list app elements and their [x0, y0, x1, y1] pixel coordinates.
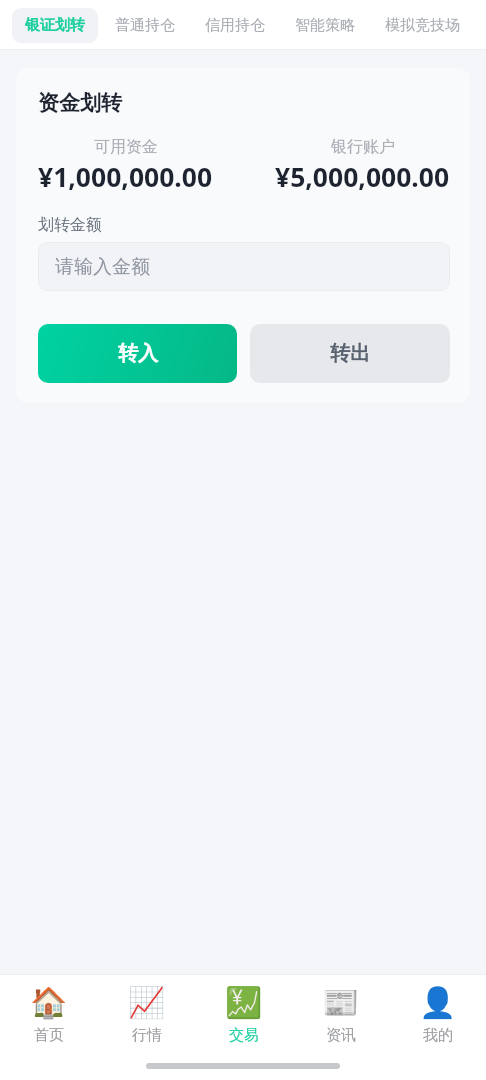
staticText: 交易: [229, 1026, 259, 1045]
button[interactable]: 请输入金额: [38, 242, 450, 291]
staticText: 请输入金额: [55, 255, 150, 279]
staticText: 银行账户: [331, 137, 395, 157]
staticText: 📰: [322, 985, 360, 1020]
staticText: ¥1,000,000.00: [38, 159, 213, 195]
button[interactable]: 模拟竞技场: [372, 8, 473, 43]
button[interactable]: News: [292, 975, 389, 1055]
staticText: 👤: [419, 985, 457, 1020]
button[interactable]: Market: [98, 975, 195, 1055]
staticText: ¥5,000,000.00: [275, 159, 450, 195]
staticText: 可用资金: [94, 137, 158, 157]
button[interactable]: Trade: [195, 975, 292, 1055]
staticText: 模拟竞技场: [385, 16, 460, 35]
button[interactable]: 信用持仓: [192, 8, 278, 43]
staticText: 转入: [118, 341, 158, 366]
staticText: 我的: [423, 1026, 453, 1045]
staticText: 智能策略: [295, 16, 355, 35]
staticText: 资金划转: [38, 90, 122, 116]
button[interactable]: 转入: [38, 324, 237, 383]
staticText: 💹: [225, 985, 263, 1020]
staticText: 资讯: [326, 1026, 356, 1045]
button[interactable]: Home: [0, 975, 98, 1055]
staticText: 信用持仓: [205, 16, 265, 35]
staticText: 📈: [128, 985, 166, 1020]
staticText: 普通持仓: [115, 16, 175, 35]
button[interactable]: 普通持仓: [102, 8, 188, 43]
button[interactable]: 智能策略: [282, 8, 368, 43]
button[interactable]: 银证划转: [12, 8, 98, 43]
button[interactable]: Profile: [389, 975, 486, 1055]
staticText: 转出: [330, 341, 370, 366]
button[interactable]: 转出: [250, 324, 450, 383]
staticText: 🏠: [30, 985, 68, 1020]
staticText: 首页: [34, 1026, 64, 1045]
staticText: 划转金额: [38, 215, 102, 235]
staticText: 银证划转: [25, 16, 85, 35]
staticText: 行情: [132, 1026, 162, 1045]
